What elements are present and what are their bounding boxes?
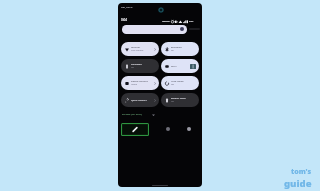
staticText: Verizon — [162, 20, 170, 23]
staticText: Auto-rotate — [171, 80, 184, 83]
staticText: 94% — [189, 20, 194, 23]
button[interactable]: Settings — [163, 124, 173, 134]
button[interactable]: Quick connect — [121, 93, 159, 107]
staticText: Wi-Fi — [171, 65, 177, 68]
button[interactable]: Flashlight — [121, 59, 159, 73]
staticText: Home — [131, 83, 137, 86]
staticText: TWC Wifi xxx — [131, 49, 144, 52]
button[interactable]: Device controls — [121, 76, 159, 90]
staticText: Device controls — [131, 80, 148, 83]
staticText: Bluetooth — [171, 46, 182, 49]
staticText: Battery Saver — [171, 97, 186, 100]
staticText: Internet — [131, 46, 141, 49]
button[interactable]: Edit tiles — [121, 123, 149, 136]
staticText: 0:04 — [121, 18, 127, 22]
button[interactable]: Bluetooth — [161, 42, 199, 56]
button[interactable]: Brightness — [122, 25, 187, 34]
staticText: Off — [171, 83, 175, 86]
staticText: Quick connect — [131, 99, 147, 102]
button[interactable]: Battery Saver — [161, 93, 199, 107]
staticText: 5G data (MY DATA) — [122, 113, 142, 116]
button[interactable]: Power — [184, 124, 194, 134]
staticText: Off — [171, 100, 175, 103]
staticText: guide — [284, 177, 312, 190]
staticText: Off — [131, 66, 135, 69]
staticText: Flashlight — [131, 63, 142, 66]
staticText: tom's — [291, 167, 312, 177]
button[interactable]: Internet — [121, 42, 159, 56]
button[interactable]: Auto-rotate — [161, 76, 199, 90]
staticText: Tue, Nov 9 — [121, 6, 133, 9]
button[interactable]: Wi-Fi — [161, 59, 199, 73]
staticText: On — [171, 49, 174, 52]
